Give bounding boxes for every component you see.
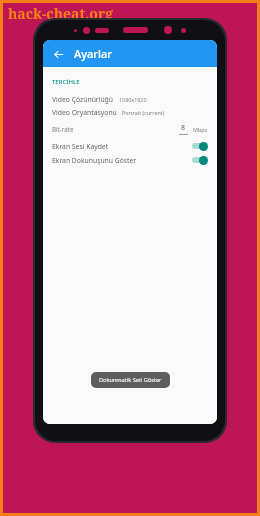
staticText: Video Oryantasyonu	[52, 108, 117, 117]
staticText: Bit-rate	[52, 125, 74, 133]
staticText: Dokunmatik Seti Göster	[99, 376, 162, 384]
button[interactable]: Dokunmatik Seti Göster	[91, 372, 170, 388]
staticText: TERCİHLE	[52, 78, 80, 86]
staticText: 8	[181, 123, 186, 133]
staticText: hack-cheat.org	[8, 4, 114, 23]
staticText: Portrait (current)	[122, 109, 165, 116]
staticText: Video Çözünürlüğü	[52, 95, 114, 104]
button[interactable]: Bit-rate	[43, 122, 217, 136]
button[interactable]: Ekran Dokunuşunu Göster	[43, 153, 217, 167]
button[interactable]: Ekran Sesi Kaydet	[43, 139, 217, 153]
staticText: Ayarlar	[74, 46, 112, 61]
staticText: Mbps	[193, 126, 208, 133]
staticText: Ekran Dokunuşunu Göster	[52, 156, 137, 165]
button[interactable]: Back	[47, 43, 69, 65]
button[interactable]: Video Oryantasyonu	[43, 106, 217, 119]
staticText: Ekran Sesi Kaydet	[52, 142, 109, 151]
button[interactable]: Video Çözünürlüğü	[43, 93, 217, 106]
staticText: 1080x1920	[119, 96, 147, 103]
